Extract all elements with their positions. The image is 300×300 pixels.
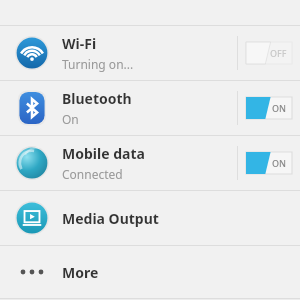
staticText: ON [272,102,287,114]
staticText: On [62,111,79,127]
staticText: More [62,263,99,282]
button[interactable]: Bluetooth [0,81,300,135]
button[interactable]: Switch off [246,42,292,64]
button[interactable]: Switch on [246,152,292,174]
staticText: Turning on... [62,56,134,72]
staticText: Mobile data [62,144,145,163]
button[interactable]: More [0,246,300,298]
staticText: Media Output [62,209,159,228]
staticText: Bluetooth [62,89,132,108]
button[interactable]: Switch on [246,97,292,119]
button[interactable]: Mobile data [0,136,300,190]
button[interactable]: Wi-Fi [0,26,300,80]
staticText: Connected [62,166,123,182]
staticText: ON [272,157,287,169]
staticText: Wi-Fi [62,34,97,53]
button[interactable]: Media Output [0,191,300,245]
staticText: OFF [270,47,287,59]
